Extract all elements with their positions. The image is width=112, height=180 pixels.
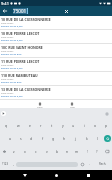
button[interactable]: Space <box>16 158 78 170</box>
staticText: h <box>63 136 66 141</box>
button[interactable]: z <box>8 145 19 158</box>
button[interactable]: g <box>48 132 59 145</box>
button[interactable]: 11 RUE PIERRE LESCOT <box>0 58 112 72</box>
button[interactable]: Recents <box>81 171 95 180</box>
button[interactable]: Emoji <box>78 158 86 170</box>
button[interactable]: e <box>24 119 35 132</box>
staticText: Liste <box>70 106 75 109</box>
staticText: m <box>75 149 79 154</box>
staticText: w <box>17 123 20 128</box>
staticText: ! <box>87 149 88 154</box>
staticText: Paris 75001 <box>1 50 14 53</box>
button[interactable]: ? <box>92 145 102 158</box>
staticText: 11 RUE PIERRE LESCOT <box>1 59 40 64</box>
staticText: r <box>40 123 42 128</box>
button[interactable]: i <box>79 119 90 132</box>
button[interactable]: ?123 <box>0 158 11 170</box>
button[interactable]: 75001 <box>13 8 28 14</box>
button[interactable]: Settings <box>105 112 109 116</box>
button[interactable]: t <box>46 119 57 132</box>
staticText: b <box>56 149 59 154</box>
button[interactable]: Rech. <box>93 158 112 170</box>
button[interactable]: d <box>26 132 37 145</box>
button[interactable]: y <box>57 119 68 132</box>
button[interactable]: m <box>72 145 82 158</box>
button[interactable]: Shift <box>0 145 8 158</box>
staticText: 75001 <box>13 8 27 14</box>
button[interactable]: 10C RUE SAINT HONORE <box>0 44 112 58</box>
staticText: 10 RUE DE LA CUISSONNERIE <box>1 17 51 22</box>
staticText: Bailleur social RMP <box>1 81 22 84</box>
button[interactable]: p <box>101 119 112 132</box>
staticText: t <box>51 123 53 128</box>
staticText: Paris 75001 <box>1 64 14 67</box>
staticText: l <box>97 136 98 141</box>
button[interactable]: s <box>15 132 26 145</box>
staticText: p <box>105 123 108 128</box>
button[interactable]: j <box>70 132 81 145</box>
staticText: Rech. <box>99 162 107 166</box>
staticText: k <box>86 136 88 141</box>
button[interactable]: a <box>4 132 15 145</box>
button[interactable]: r <box>35 119 46 132</box>
button[interactable]: ! <box>82 145 92 158</box>
button[interactable]: Back <box>2 8 8 14</box>
staticText: n <box>66 149 69 154</box>
staticText: j <box>75 136 76 141</box>
button[interactable]: x <box>19 145 30 158</box>
staticText: 9:41 <box>1 1 9 6</box>
staticText: Paris 75001 <box>1 92 14 95</box>
button[interactable]: v <box>41 145 52 158</box>
button[interactable]: n <box>62 145 72 158</box>
staticText: 13 RUE DE LA CUISSONNERIE <box>1 87 51 92</box>
button[interactable]: 13 RUE DE LA CUISSONNERIE <box>0 86 112 100</box>
button[interactable]: 10 RUE DE LA CUISSONNERIE <box>0 16 112 30</box>
staticText: o <box>94 123 97 128</box>
button[interactable]: 118 RUE RAMBUTEAU <box>0 72 112 86</box>
staticText: ?123 <box>2 162 9 166</box>
button[interactable]: Comma <box>11 158 16 170</box>
staticText: f <box>42 136 44 141</box>
button[interactable]: k <box>81 132 92 145</box>
button[interactable]: Gboard menu <box>1 111 6 116</box>
staticText: ? <box>96 149 98 154</box>
button[interactable]: Search <box>103 132 112 145</box>
staticText: x <box>24 149 26 154</box>
button[interactable]: h <box>59 132 70 145</box>
staticText: Paris 75001 <box>1 78 14 81</box>
staticText: v <box>46 149 48 154</box>
button[interactable]: Clear <box>63 8 70 15</box>
button[interactable]: u <box>68 119 79 132</box>
button[interactable]: Home <box>49 171 63 180</box>
staticText: Paris 75001 <box>1 22 14 25</box>
button[interactable]: l <box>92 132 103 145</box>
button[interactable]: Liste <box>66 102 78 109</box>
staticText: , <box>13 162 14 166</box>
staticText: Paris 75001 <box>1 36 14 39</box>
button[interactable]: o <box>90 119 101 132</box>
button[interactable]: f <box>37 132 48 145</box>
button[interactable]: 10 RUE PIERRE LESCOT <box>0 30 112 44</box>
button[interactable]: Back <box>18 171 32 180</box>
staticText: q <box>5 123 8 128</box>
staticText: i <box>84 123 85 128</box>
staticText: 10C RUE SAINT HONORE <box>1 45 43 50</box>
staticText: a <box>9 136 11 141</box>
staticText: Bailleur social 8,000 <box>1 67 23 70</box>
button[interactable]: Backspace <box>102 145 112 158</box>
button[interactable]: Carte <box>34 102 46 109</box>
button[interactable]: c <box>30 145 41 158</box>
staticText: 10 RUE PIERRE LESCOT <box>1 31 40 36</box>
staticText: Bailleur social RMP <box>1 53 22 56</box>
button[interactable]: b <box>52 145 62 158</box>
staticText: s <box>20 136 22 141</box>
staticText: c <box>35 149 37 154</box>
staticText: g <box>52 136 55 141</box>
button[interactable]: q <box>0 119 12 132</box>
staticText: Carte <box>37 106 43 109</box>
staticText: y <box>62 123 64 128</box>
button[interactable]: w <box>12 119 24 132</box>
staticText: Bailleur social 8,000 <box>1 95 23 98</box>
staticText: d <box>30 136 33 141</box>
